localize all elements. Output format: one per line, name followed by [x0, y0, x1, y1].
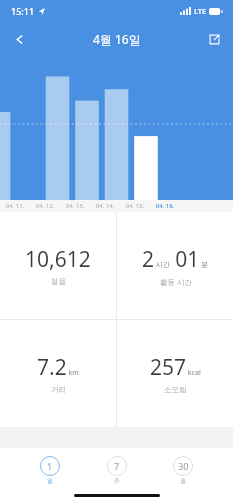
button[interactable]: Share: [199, 24, 229, 54]
staticText: 04. 16.: [150, 202, 180, 210]
staticText: 257 kcal: [150, 353, 201, 382]
button[interactable]: 257 kcal: [117, 320, 233, 427]
staticText: LTE: [194, 6, 207, 16]
staticText: 1: [47, 460, 53, 472]
staticText: 걸음: [51, 277, 66, 286]
button[interactable]: Back: [4, 24, 34, 54]
button[interactable]: 1: [34, 455, 66, 486]
staticText: 04. 14.: [90, 202, 120, 210]
staticText: 4월 16일: [93, 31, 141, 47]
staticText: 7: [114, 460, 120, 472]
staticText: 7.2 km: [37, 353, 79, 382]
button[interactable]: 7: [101, 455, 133, 486]
staticText: 30: [178, 460, 189, 472]
staticText: 주: [114, 477, 120, 485]
staticText: 04. 13.: [60, 202, 90, 210]
staticText: 월: [180, 477, 186, 485]
staticText: 04. 15.: [120, 202, 150, 210]
staticText: 10,612: [25, 245, 91, 274]
button[interactable]: 2 시간 01 분: [117, 212, 233, 319]
staticText: 일: [47, 477, 53, 485]
staticText: 04. 12.: [30, 202, 60, 210]
staticText: 15:11: [11, 5, 35, 17]
staticText: 거리: [51, 385, 66, 394]
button[interactable]: 10,612: [0, 212, 116, 319]
staticText: 활동 시간: [160, 277, 192, 287]
button[interactable]: 7.2 km: [0, 320, 116, 427]
staticText: 소모됨: [164, 385, 187, 394]
staticText: 2 시간 01 분: [142, 245, 209, 274]
button[interactable]: 30: [167, 455, 199, 486]
staticText: 04. 11.: [0, 202, 30, 210]
